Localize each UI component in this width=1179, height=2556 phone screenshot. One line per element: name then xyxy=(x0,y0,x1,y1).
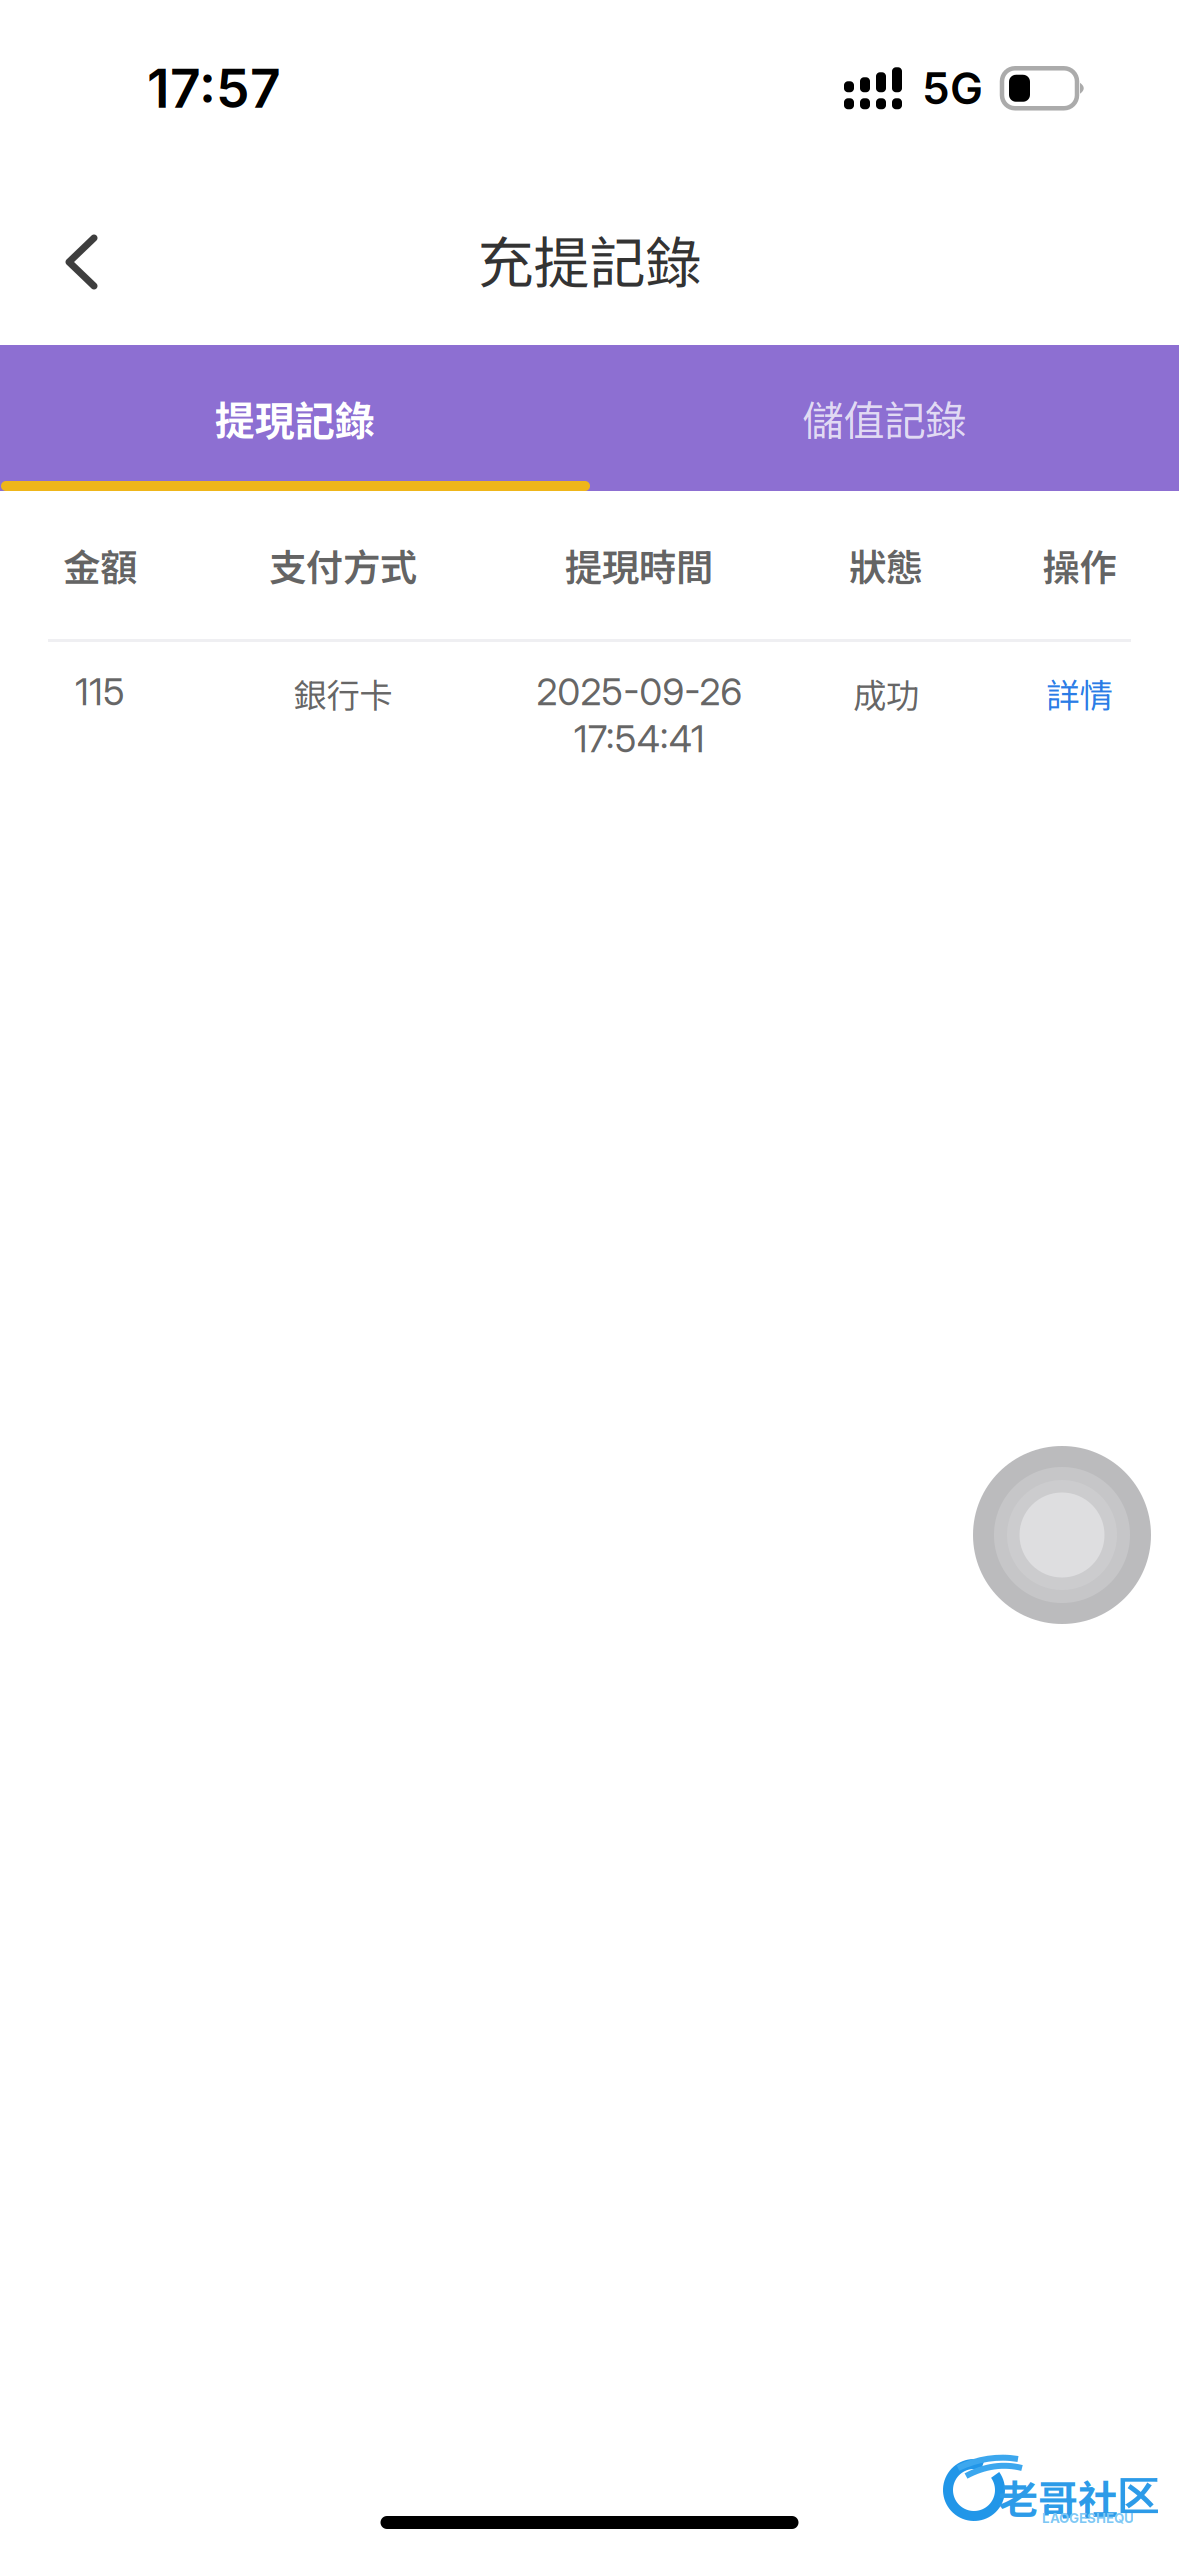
staticText: 成功 xyxy=(853,669,919,717)
button[interactable]: 提現記錄 xyxy=(0,345,589,499)
button[interactable]: 詳情 xyxy=(980,669,1179,717)
staticText: 老哥社区 xyxy=(998,2468,1158,2526)
staticText: 充提記錄 xyxy=(477,218,701,300)
staticText: 金額 xyxy=(63,538,137,592)
staticText: 支付方式 xyxy=(269,538,417,592)
staticText: 提現時間 xyxy=(565,538,713,592)
staticText: 狀態 xyxy=(849,538,923,592)
staticText: 17:57 xyxy=(147,56,281,120)
staticText: LAOGESHEQU xyxy=(1042,2510,1134,2526)
staticText: 銀行卡 xyxy=(293,669,392,717)
staticText: 操作 xyxy=(1042,538,1116,592)
staticText: 儲值記錄 xyxy=(802,388,966,448)
staticText: 5G xyxy=(922,62,983,115)
button[interactable]: AssistiveTouch xyxy=(973,1446,1151,1624)
staticText: 115 xyxy=(75,669,125,714)
staticText: 提現記錄 xyxy=(215,389,375,447)
staticText: 詳情 xyxy=(1046,669,1112,717)
button[interactable]: 儲值記錄 xyxy=(589,345,1179,499)
button[interactable]: Back xyxy=(0,170,144,319)
staticText: 2025-09-26 17:54:41 xyxy=(536,669,742,761)
